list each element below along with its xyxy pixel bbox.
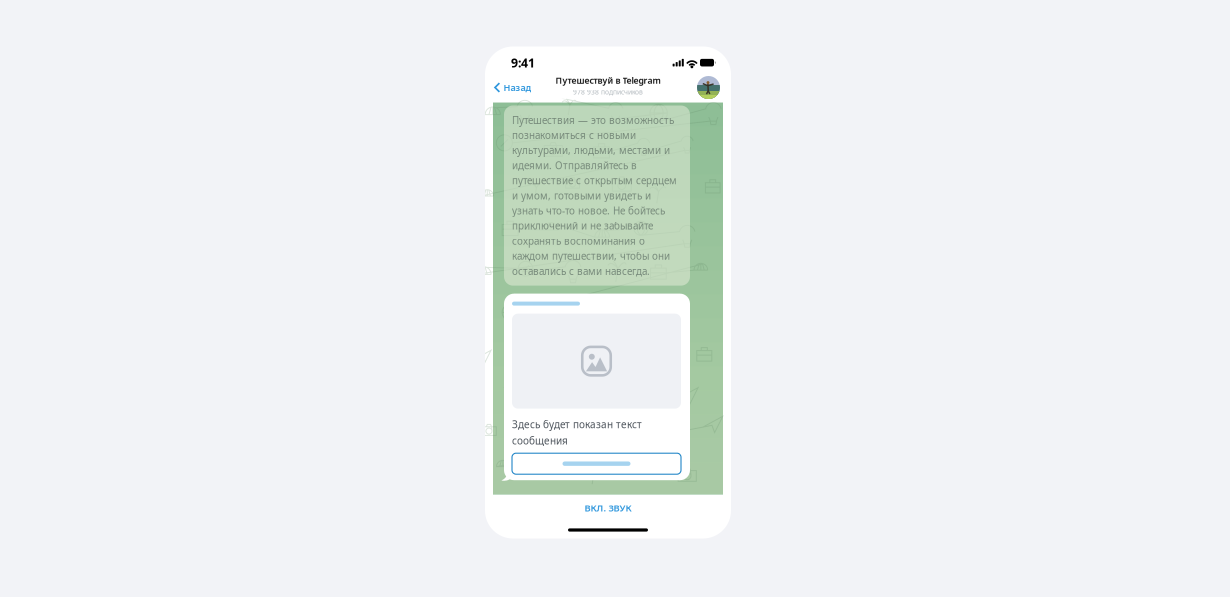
button[interactable]	[512, 453, 681, 474]
staticText: Путешествия — это возможность познакомит…	[512, 113, 677, 278]
staticText: 978 938 подписчиков	[573, 88, 643, 96]
staticText: ВКЛ. ЗВУК	[584, 502, 631, 514]
button[interactable]: ВКЛ. ЗВУК	[485, 494, 731, 521]
button[interactable]: Channel profile	[691, 72, 731, 102]
staticText: Здесь будет показан текст сообщения	[512, 418, 642, 447]
button[interactable]: Назад	[485, 72, 537, 102]
staticText: Назад	[503, 81, 531, 93]
staticText: 9:41	[511, 54, 535, 71]
staticText: Путешествуй в Telegram	[555, 75, 660, 86]
